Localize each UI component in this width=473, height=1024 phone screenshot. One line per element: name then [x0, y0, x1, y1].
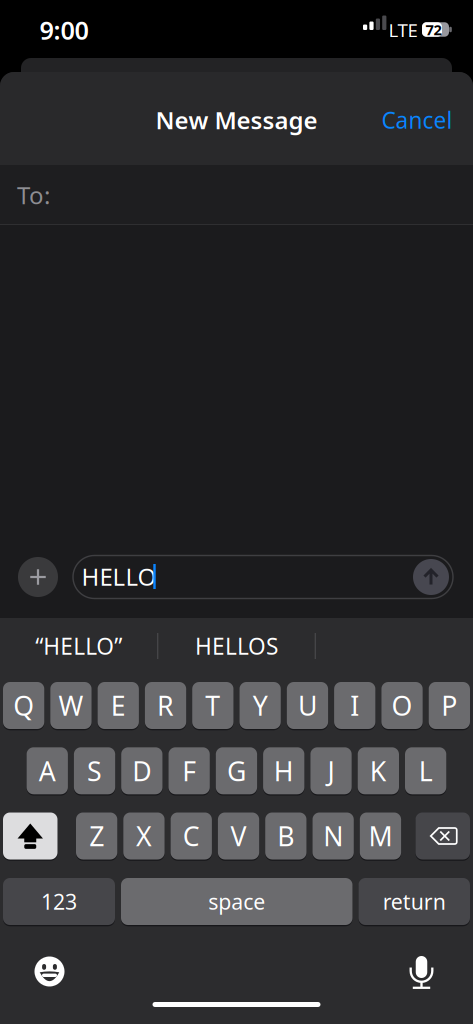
staticText: X [136, 818, 152, 854]
staticText: New Message [155, 104, 317, 136]
button[interactable]: G [216, 747, 257, 794]
button[interactable]: H [263, 747, 304, 794]
staticText: Y [253, 688, 268, 723]
button[interactable]: 123 [3, 878, 115, 925]
staticText: return [383, 887, 446, 916]
staticText: F [182, 753, 196, 788]
button[interactable]: J [310, 747, 352, 794]
staticText: A [39, 753, 56, 788]
button[interactable]: return [358, 878, 470, 925]
staticText: R [157, 688, 174, 723]
staticText: I [350, 688, 359, 723]
button[interactable]: P [429, 682, 470, 729]
button[interactable]: F [168, 747, 210, 794]
button[interactable]: C [171, 812, 212, 859]
staticText: HELLOS [195, 631, 278, 661]
button[interactable] [3, 812, 57, 859]
button[interactable]: N [312, 812, 354, 859]
staticText: H [274, 753, 294, 788]
button[interactable]: “HELLO” [35, 631, 122, 661]
staticText: To: [17, 179, 50, 211]
staticText: Q [13, 688, 34, 723]
staticText: LTE [388, 18, 417, 42]
staticText: “HELLO” [35, 631, 122, 661]
staticText: space [208, 887, 265, 916]
staticText: U [298, 688, 317, 723]
staticText: P [441, 688, 457, 723]
staticText: O [391, 688, 412, 723]
button[interactable] [73, 555, 453, 598]
button[interactable]: E [98, 682, 139, 729]
button[interactable] [408, 954, 434, 990]
staticText: T [205, 688, 220, 723]
button[interactable]: S [74, 747, 115, 794]
staticText: B [277, 818, 294, 854]
staticText: Cancel [381, 105, 452, 135]
button[interactable]: HELLOS [195, 631, 278, 661]
staticText: K [370, 753, 387, 788]
staticText: E [111, 688, 126, 723]
button[interactable]: Q [3, 682, 44, 729]
staticText: M [368, 818, 392, 854]
staticText: G [227, 753, 246, 788]
button[interactable]: D [121, 747, 162, 794]
button[interactable] [413, 559, 449, 595]
button[interactable] [415, 812, 470, 859]
button[interactable]: U [287, 682, 328, 729]
button[interactable]: Z [76, 812, 117, 859]
staticText: 123 [41, 887, 77, 916]
button[interactable]: O [381, 682, 423, 729]
staticText: J [327, 753, 334, 788]
button[interactable]: Cancel [381, 105, 452, 135]
staticText: N [323, 818, 343, 854]
staticText: D [132, 753, 151, 788]
staticText: 72 [425, 20, 441, 39]
staticText: W [58, 688, 83, 723]
button[interactable]: V [218, 812, 259, 859]
staticText: C [183, 818, 200, 854]
button[interactable]: A [27, 747, 68, 794]
button[interactable]: Y [239, 682, 281, 729]
button[interactable]: To: [17, 179, 50, 211]
staticText: S [87, 753, 102, 788]
button[interactable]: X [123, 812, 165, 859]
staticText: L [419, 753, 433, 788]
staticText: HELLO [81, 561, 156, 592]
button[interactable]: T [192, 682, 233, 729]
button[interactable]: K [358, 747, 399, 794]
button[interactable]: space [121, 878, 352, 925]
button[interactable]: B [265, 812, 306, 859]
button[interactable] [18, 557, 58, 597]
button[interactable]: I [334, 682, 375, 729]
button[interactable] [0, 165, 473, 224]
button[interactable]: M [360, 812, 401, 859]
button[interactable]: W [50, 682, 92, 729]
staticText: V [230, 818, 246, 854]
staticText: 9:00 [39, 13, 88, 47]
button[interactable] [34, 956, 64, 986]
staticText: Z [89, 818, 104, 854]
button[interactable]: L [405, 747, 446, 794]
button[interactable]: R [145, 682, 186, 729]
